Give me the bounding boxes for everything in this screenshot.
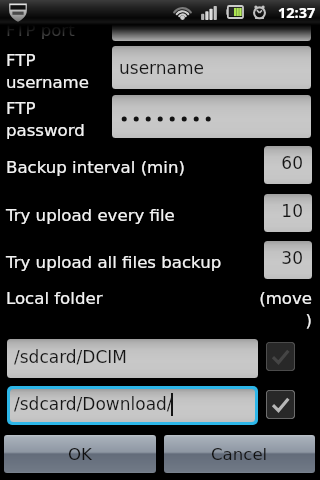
- staticText: FTP password: [6, 99, 110, 140]
- staticText: /sdcard/DCIM: [14, 347, 127, 367]
- staticText: Try upload all files backup: [6, 253, 222, 272]
- staticText: 10: [264, 201, 303, 232]
- staticText: FTP username: [6, 51, 110, 92]
- button[interactable]: Include folder: [266, 390, 295, 419]
- staticText: Try upload every file: [6, 206, 175, 225]
- staticText: FTP port: [6, 21, 75, 40]
- staticText: Local folder: [6, 289, 103, 308]
- button[interactable]: Include folder: [266, 342, 295, 371]
- staticText: (move): [258, 289, 312, 330]
- staticText: 30: [264, 248, 303, 279]
- staticText: /sdcard/Download/: [14, 394, 173, 414]
- staticText: 60: [264, 153, 303, 184]
- staticText: Cancel: [211, 445, 268, 464]
- staticText: username: [119, 58, 204, 78]
- staticText: OK: [68, 445, 92, 464]
- button[interactable]: Cancel: [164, 435, 315, 473]
- staticText: 12:37: [278, 3, 316, 23]
- staticText: Backup interval (min): [6, 158, 185, 177]
- button[interactable]: OK: [4, 435, 156, 473]
